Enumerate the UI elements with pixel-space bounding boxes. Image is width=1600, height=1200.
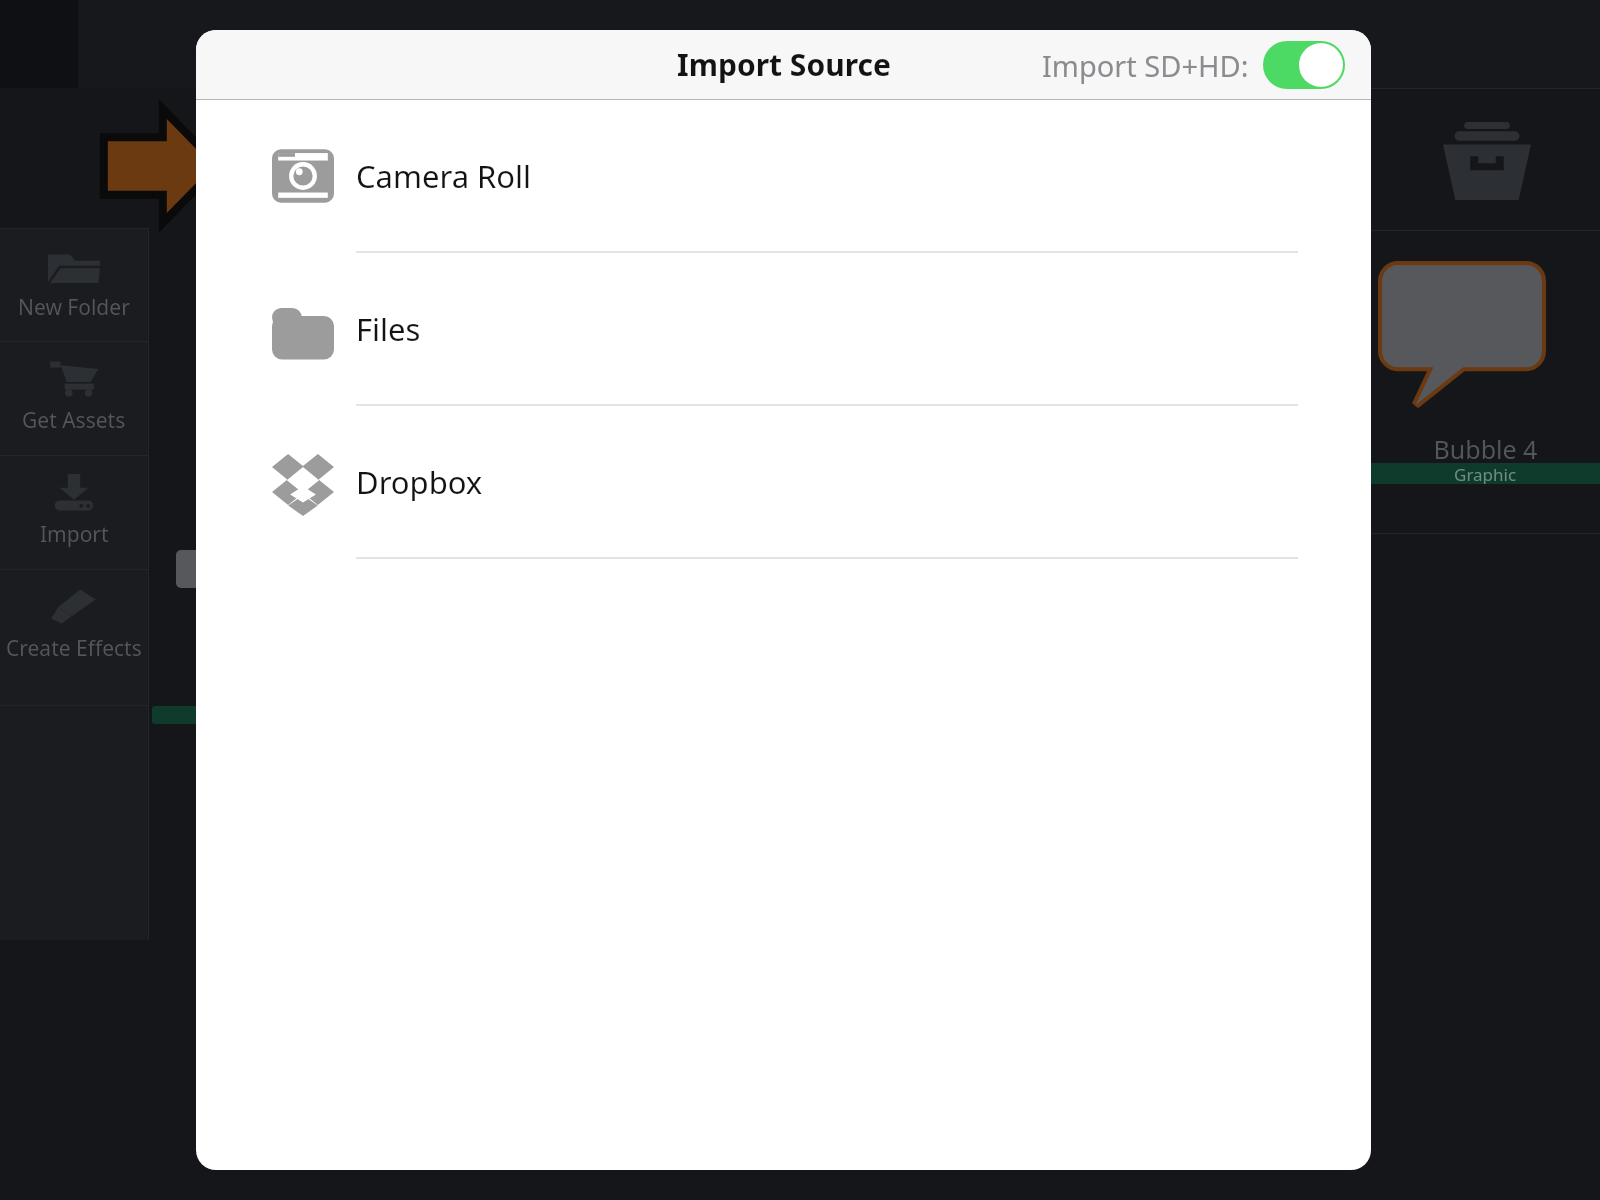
staticText: Get Assets [22,406,126,435]
button[interactable]: Files [196,253,1371,406]
staticText: Create Effects [6,634,142,663]
staticText: Import Source [677,44,891,85]
staticText: Bubble 4 [1371,432,1600,466]
staticText: Files [356,308,421,350]
staticText: Camera Roll [356,155,532,197]
staticText: Import SD+HD: [1042,46,1249,85]
button[interactable]: Create Effects [0,569,148,682]
staticText: Import [40,520,109,549]
staticText: Dropbox [356,461,483,503]
button[interactable]: Import [0,455,148,568]
button[interactable]: Import SD plus HD toggle [1263,41,1345,89]
button[interactable]: Camera Roll [196,100,1371,253]
button[interactable]: Dropbox [196,406,1371,559]
button[interactable]: New Folder [0,228,148,341]
button[interactable]: Get Assets [0,341,148,454]
staticText: Graphic [1454,463,1517,484]
staticText: New Folder [18,293,130,322]
